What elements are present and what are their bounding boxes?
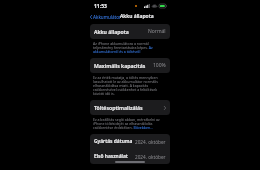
- staticText: 11:53: [94, 3, 107, 10]
- button[interactable]: Gyártás dátuma: [90, 134, 170, 149]
- staticText: 2024. október: [135, 139, 166, 145]
- staticText: Normál: [148, 28, 166, 35]
- staticText: Töltésoptimalizálás: [94, 104, 143, 111]
- staticText: Gyártás dátuma: [94, 138, 133, 145]
- button[interactable]: Vissza: Akkumulátor: [85, 13, 123, 21]
- button[interactable]: Akku állapota: [90, 24, 170, 39]
- staticText: Első használat: [94, 153, 128, 160]
- button[interactable]: Töltésoptimalizálás: [90, 100, 170, 115]
- staticText: Ez az érték mutatja, a töltés mennyiben …: [93, 75, 167, 96]
- button[interactable]: Maximális kapacitás: [90, 58, 170, 73]
- staticText: Akku állapota: [120, 13, 154, 20]
- staticText: Akku állapota: [94, 28, 129, 35]
- button[interactable]: Első használat: [90, 149, 170, 164]
- staticText: Maximális kapacitás: [94, 62, 146, 69]
- staticText: Az iPhone akkumulátora a normál teljesít…: [93, 41, 167, 54]
- staticText: 2024. október: [135, 154, 166, 160]
- staticText: Akkumulátor: [93, 14, 121, 20]
- staticText: 100%: [153, 62, 166, 69]
- staticText: Ez a beállítás segíti abban, mérsékelni …: [93, 117, 167, 130]
